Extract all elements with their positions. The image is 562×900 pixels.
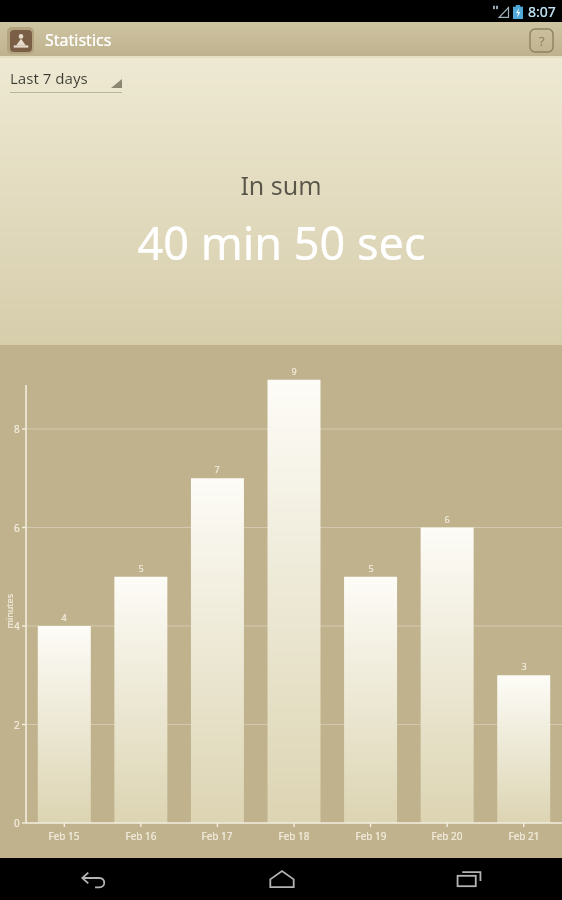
staticText: Feb 17 <box>201 829 233 843</box>
staticText: 8 <box>14 422 20 436</box>
staticText: Feb 20 <box>431 829 463 843</box>
staticText: minutes <box>2 593 14 628</box>
button[interactable]: Back <box>0 858 188 900</box>
staticText: In sum <box>240 168 322 202</box>
staticText: 2 <box>14 718 20 732</box>
staticText: 5 <box>138 562 144 574</box>
staticText: 5 <box>368 562 374 574</box>
staticText: Feb 15 <box>48 829 80 843</box>
button[interactable]: Recent apps <box>375 858 562 900</box>
staticText: Last 7 days <box>10 68 88 88</box>
staticText: 8:07 <box>528 2 556 21</box>
button[interactable]: Home <box>188 858 375 900</box>
staticText: ? <box>539 32 545 50</box>
staticText: Feb 19 <box>355 829 387 843</box>
staticText: 6 <box>14 521 20 535</box>
staticText: 4 <box>61 611 67 623</box>
button[interactable]: Navigate up <box>7 27 34 54</box>
staticText: 0 <box>14 816 20 830</box>
staticText: 9 <box>291 365 297 377</box>
staticText: Statistics <box>45 29 112 51</box>
staticText: 4 <box>14 619 20 633</box>
staticText: 7 <box>214 463 220 475</box>
staticText: Feb 16 <box>125 829 157 843</box>
staticText: 6 <box>444 513 450 525</box>
staticText: 3 <box>521 660 527 672</box>
button[interactable]: Help <box>520 22 562 58</box>
button[interactable]: Last 7 days <box>10 68 122 88</box>
staticText: 40 min 50 sec <box>137 212 426 273</box>
staticText: Feb 18 <box>278 829 310 843</box>
staticText: Feb 21 <box>508 829 540 843</box>
